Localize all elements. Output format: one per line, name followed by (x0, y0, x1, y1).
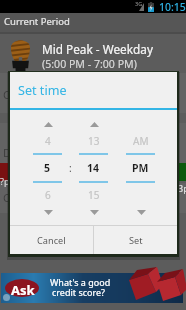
staticText: AM (133, 134, 149, 148)
staticText: credit score? (52, 286, 105, 298)
staticText: What's a good (50, 276, 111, 288)
staticText: Set time (18, 82, 67, 99)
button[interactable]: Increment (89, 121, 99, 127)
staticText: Cancel (37, 234, 66, 247)
button[interactable]: 5 (33, 159, 62, 177)
staticText: 10:15 (159, 0, 186, 13)
staticText: 6 (45, 188, 51, 202)
staticText: 3p (178, 182, 186, 194)
button[interactable]: Decrement (136, 209, 146, 215)
staticText: 13 (88, 134, 100, 148)
staticText: Current Period (4, 15, 70, 28)
button[interactable]: Decrement (43, 209, 53, 215)
staticText: 4 (45, 134, 51, 148)
staticText: : (69, 161, 72, 175)
staticText: C (3, 190, 10, 205)
button[interactable]: Ask (1, 273, 183, 303)
staticText: 15 (88, 188, 100, 202)
staticText: Ask (11, 281, 35, 299)
staticText: ?p (0, 175, 10, 187)
staticText: PM (132, 161, 149, 175)
staticText: 3G (135, 0, 143, 7)
button[interactable]: Cancel (10, 226, 93, 254)
button[interactable]: Decrement (89, 209, 99, 215)
button[interactable]: PM (126, 159, 155, 177)
staticText: 14 (87, 161, 100, 175)
staticText: Mid Peak - Weekday (42, 41, 153, 57)
button[interactable]: Increment (43, 121, 53, 127)
staticText: (5:00 PM - 7:00 PM) (42, 57, 137, 71)
staticText: 5 (44, 161, 51, 175)
staticText: C (3, 87, 10, 102)
staticText: D (3, 145, 12, 160)
staticText: Set (129, 234, 143, 247)
button[interactable]: 14 (79, 159, 108, 177)
button[interactable]: Set (94, 226, 177, 254)
